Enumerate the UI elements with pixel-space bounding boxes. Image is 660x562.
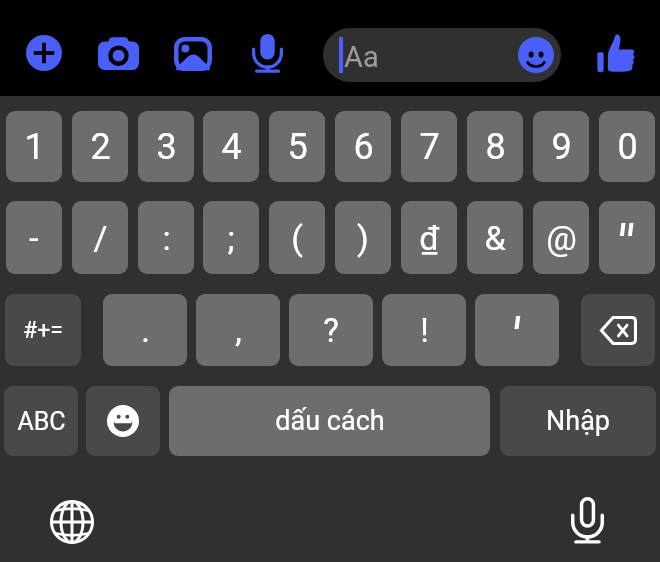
button[interactable]: ,	[196, 294, 280, 366]
staticText: @	[546, 218, 577, 258]
staticText: dấu cách	[275, 405, 385, 437]
button[interactable]: /	[72, 201, 128, 274]
button[interactable]: #+=	[5, 294, 81, 366]
button[interactable]: Quotation mark	[599, 201, 655, 274]
staticText: (	[291, 218, 303, 258]
staticText: 0	[617, 126, 638, 168]
button[interactable]: Send a like	[597, 33, 635, 73]
staticText: 8	[485, 126, 506, 168]
button[interactable]: Camera	[98, 37, 139, 70]
button[interactable]: 0	[599, 111, 655, 182]
button[interactable]: 9	[533, 111, 589, 182]
button[interactable]: 3	[138, 111, 194, 182]
staticText: :	[162, 218, 171, 258]
button[interactable]: !	[382, 294, 466, 366]
staticText: ?	[323, 311, 339, 350]
button[interactable]: Emoji keyboard	[86, 386, 160, 456]
button[interactable]: &	[467, 201, 523, 274]
staticText: 2	[90, 126, 111, 168]
button[interactable]: 6	[335, 111, 391, 182]
button[interactable]: dấu cách	[169, 386, 490, 456]
button[interactable]: Nhập	[500, 386, 656, 456]
button[interactable]: ₫	[401, 201, 457, 274]
button[interactable]: Change keyboard language	[50, 500, 94, 544]
button[interactable]: 5	[269, 111, 325, 182]
staticText: ;	[227, 218, 235, 258]
button[interactable]: @	[533, 201, 589, 274]
staticText: 4	[221, 126, 242, 168]
staticText: #+=	[23, 317, 63, 344]
staticText: 3	[156, 126, 177, 168]
button[interactable]: (	[269, 201, 325, 274]
staticText: 6	[353, 126, 374, 168]
button[interactable]: Gallery	[174, 37, 212, 71]
button[interactable]: 2	[72, 111, 128, 182]
button[interactable]: 4	[203, 111, 259, 182]
staticText: /	[93, 218, 108, 258]
staticText: ₫	[419, 218, 439, 258]
button[interactable]: Backspace	[581, 294, 655, 366]
button[interactable]: Voice input	[571, 497, 604, 544]
staticText: 7	[419, 126, 440, 168]
button[interactable]: :	[138, 201, 194, 274]
staticText: !	[420, 311, 429, 350]
staticText: Aa	[344, 40, 379, 74]
button[interactable]: Apostrophe	[475, 294, 559, 366]
staticText: 9	[551, 126, 572, 168]
staticText: .	[141, 311, 150, 350]
staticText: ,	[235, 311, 242, 350]
staticText: )	[357, 218, 369, 258]
button[interactable]: 8	[467, 111, 523, 182]
button[interactable]: .	[103, 294, 187, 366]
staticText: &	[484, 218, 506, 258]
button[interactable]: Record voice message	[252, 34, 283, 73]
button[interactable]: ;	[203, 201, 259, 274]
staticText: ABC	[17, 407, 66, 436]
staticText: Nhập	[546, 405, 610, 437]
button[interactable]: Emoji	[518, 37, 554, 73]
button[interactable]: 1	[6, 111, 62, 182]
button[interactable]: ABC	[4, 386, 78, 456]
button[interactable]: ?	[289, 294, 373, 366]
staticText: 1	[24, 126, 45, 168]
button[interactable]: 7	[401, 111, 457, 182]
button[interactable]: Open actions	[26, 35, 62, 71]
button[interactable]: -	[6, 201, 62, 274]
staticText: -	[29, 218, 39, 258]
button[interactable]: Aa	[323, 28, 561, 82]
button[interactable]: )	[335, 201, 391, 274]
staticText: 5	[287, 126, 308, 168]
